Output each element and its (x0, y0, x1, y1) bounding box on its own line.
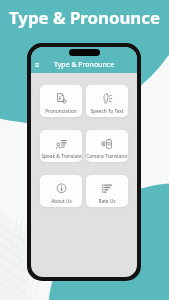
button[interactable]: Camera Translator (86, 130, 128, 162)
button[interactable]: Open navigation menu (31, 57, 43, 72)
button[interactable]: Speech To Text (86, 85, 128, 117)
button[interactable]: Rate Us (86, 175, 128, 207)
staticText: Rate Us (98, 198, 116, 205)
button[interactable]: Pronunciation (40, 85, 82, 117)
staticText: About Us (51, 198, 72, 205)
staticText: Type & Pronounce (9, 6, 160, 29)
staticText: Type & Pronounce (54, 60, 115, 70)
button[interactable]: Speak & Translate (40, 130, 82, 162)
staticText: Speech To Text (90, 108, 124, 115)
button[interactable]: About Us (40, 175, 82, 207)
staticText: Pronunciation (45, 108, 77, 115)
staticText: Camera Translator (86, 153, 128, 160)
staticText: Speak & Translate (41, 153, 82, 160)
